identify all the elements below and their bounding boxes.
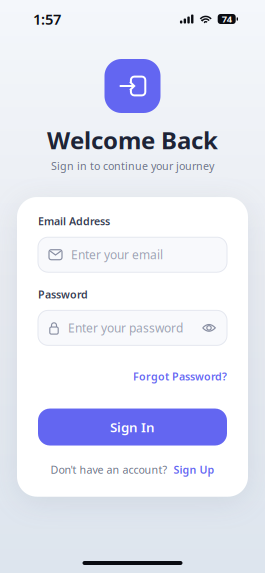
staticText: 74 (222, 13, 232, 25)
staticText: Sign In (110, 418, 155, 436)
button[interactable]: Forgot Password? (133, 369, 227, 384)
staticText: Enter your password (68, 320, 183, 336)
button[interactable]: Enter your email (38, 237, 227, 272)
button[interactable]: Sign In (38, 408, 227, 445)
staticText: Password (38, 287, 88, 301)
staticText: Sign Up (173, 462, 214, 477)
staticText: Sign in to continue your journey (51, 159, 214, 173)
staticText: Don't have an account? (50, 462, 167, 477)
staticText: Email Address (38, 214, 110, 228)
staticText: 1:57 (33, 9, 61, 29)
button[interactable]: Enter your password (38, 310, 227, 345)
staticText: Enter your email (71, 247, 163, 263)
staticText: Welcome Back (47, 124, 218, 156)
button[interactable]: Sign Up (173, 462, 214, 477)
staticText: Forgot Password? (133, 369, 227, 384)
